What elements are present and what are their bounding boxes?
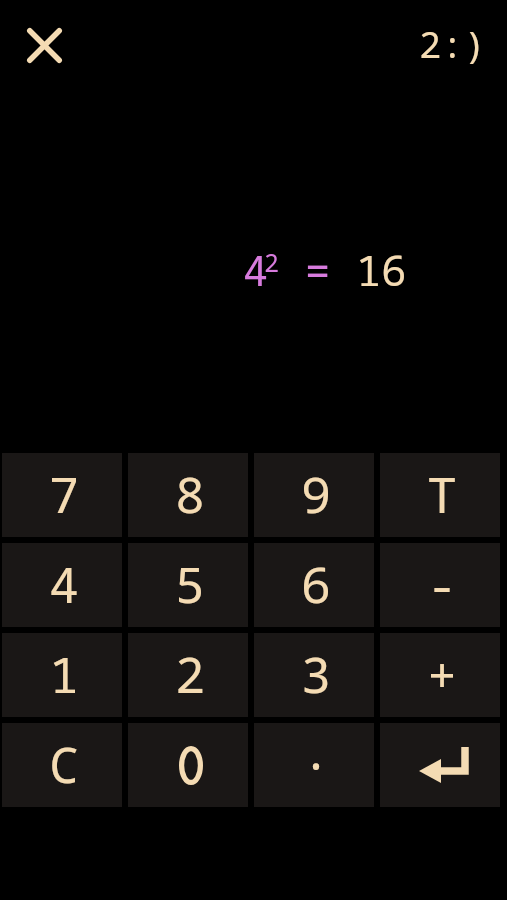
staticText: 5 — [175, 550, 205, 618]
button[interactable]: 4 — [2, 543, 122, 627]
button[interactable]: T — [380, 453, 500, 537]
button[interactable]: 5 — [128, 543, 248, 627]
button[interactable]: 8 — [128, 453, 248, 537]
staticText: C — [49, 730, 79, 798]
staticText: 8 — [175, 460, 205, 528]
staticText: - — [427, 550, 457, 618]
button[interactable] — [17, 18, 72, 73]
staticText: 6 — [301, 550, 331, 618]
staticText: · — [301, 730, 331, 798]
staticText: 4 — [49, 550, 79, 618]
staticText: 9 — [301, 460, 331, 528]
button[interactable]: 3 — [254, 633, 374, 717]
staticText: 2 — [264, 245, 280, 279]
staticText: 1 — [49, 640, 79, 708]
staticText: = — [305, 241, 331, 298]
button[interactable]: C — [2, 723, 122, 807]
button[interactable]: 9 — [254, 453, 374, 537]
button[interactable]: · — [254, 723, 374, 807]
button[interactable]: 2 — [128, 633, 248, 717]
button[interactable] — [128, 723, 248, 807]
button[interactable]: 6 — [254, 543, 374, 627]
staticText: 3 — [301, 640, 331, 708]
staticText: 2 — [175, 640, 205, 708]
button[interactable]: 1 — [2, 633, 122, 717]
staticText: 4 — [243, 241, 269, 298]
staticText: 16 — [356, 241, 407, 298]
button[interactable]: 7 — [2, 453, 122, 537]
button[interactable]: + — [380, 633, 500, 717]
staticText: + — [427, 640, 457, 708]
button[interactable]: - — [380, 543, 500, 627]
staticText: T — [427, 460, 457, 528]
button[interactable] — [380, 723, 500, 807]
staticText: 2:) — [419, 18, 486, 68]
staticText: 7 — [49, 460, 79, 528]
